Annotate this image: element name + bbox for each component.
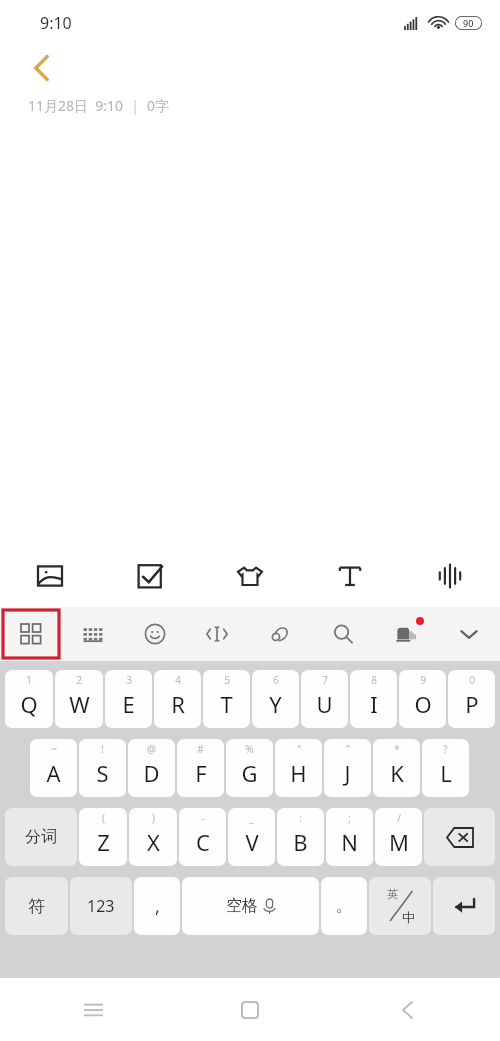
button[interactable]: / [375, 808, 422, 866]
staticText: 4 [175, 673, 181, 687]
staticText: G [241, 758, 258, 788]
button[interactable]: 空格 [182, 877, 319, 935]
button[interactable]: , [134, 877, 180, 935]
button[interactable]: Back [384, 987, 430, 1033]
button[interactable]: “ [275, 739, 322, 797]
staticText: * [394, 742, 400, 756]
staticText: 中 [402, 909, 415, 925]
button[interactable]: Train mode [374, 607, 437, 661]
button[interactable]: Keyboard panels [0, 607, 62, 661]
button[interactable]: Voice [400, 545, 500, 607]
staticText: E [122, 689, 135, 719]
button[interactable]: ) [129, 808, 177, 866]
staticText: 0字 [147, 96, 170, 115]
staticText: 8 [371, 673, 377, 687]
staticText: @ [147, 742, 156, 756]
button[interactable]: 0 [448, 670, 495, 728]
button[interactable]: 分词 [5, 808, 77, 866]
button[interactable]: Recent apps [70, 987, 116, 1033]
staticText: K [390, 758, 404, 788]
staticText: N [341, 827, 358, 857]
button[interactable]: @ [128, 739, 175, 797]
button[interactable]: Back [20, 47, 62, 89]
staticText: 3 [126, 673, 132, 687]
staticText: W [69, 689, 90, 719]
button[interactable]: _ [228, 808, 275, 866]
button[interactable]: : [277, 808, 324, 866]
button[interactable]: Home [227, 987, 273, 1033]
staticText: ; [348, 811, 351, 825]
button[interactable]: ; [326, 808, 373, 866]
button[interactable]: ~ [30, 739, 77, 797]
button[interactable]: 。 [321, 877, 367, 935]
staticText: 9:10 [40, 12, 72, 34]
staticText: % [245, 742, 254, 756]
staticText: 5 [224, 673, 230, 687]
button[interactable]: Cursor [186, 607, 248, 661]
staticText: ( [102, 811, 105, 825]
staticText: Q [20, 689, 38, 719]
staticText: 90 [463, 17, 474, 29]
staticText: L [440, 758, 452, 788]
button[interactable]: Template [200, 545, 300, 607]
staticText: 分词 [25, 827, 57, 847]
staticText: # [197, 742, 204, 756]
button[interactable]: 9 [399, 670, 446, 728]
button[interactable]: ( [79, 808, 127, 866]
button[interactable]: Keypad [62, 607, 124, 661]
button[interactable]: Emoji [124, 607, 186, 661]
staticText: D [143, 758, 160, 788]
button[interactable]: Search [311, 607, 374, 661]
button[interactable]: ! [79, 739, 126, 797]
button[interactable]: 2 [55, 670, 103, 728]
button[interactable]: Enter [433, 877, 495, 935]
button[interactable]: # [177, 739, 224, 797]
button[interactable]: 5 [203, 670, 250, 728]
staticText: X [147, 827, 160, 857]
button[interactable]: 8 [350, 670, 397, 728]
button[interactable]: Hide keyboard [437, 607, 500, 661]
button[interactable]: Backspace [424, 808, 495, 866]
button[interactable]: Clipboard [248, 607, 311, 661]
staticText: Y [269, 689, 282, 719]
button[interactable]: Insert image [0, 545, 100, 607]
button[interactable]: * [373, 739, 420, 797]
button[interactable]: 4 [154, 670, 201, 728]
staticText: 123 [87, 895, 115, 917]
staticText: 1 [26, 673, 32, 687]
staticText: B [293, 827, 308, 857]
staticText: R [171, 689, 185, 719]
staticText: A [46, 758, 61, 788]
button[interactable]: ” [324, 739, 371, 797]
staticText: - [201, 811, 205, 825]
staticText: S [96, 758, 109, 788]
staticText: 。 [336, 896, 352, 916]
staticText: F [195, 758, 207, 788]
staticText: T [220, 689, 233, 719]
staticText: U [316, 689, 333, 719]
staticText: H [290, 758, 307, 788]
staticText: : [299, 811, 302, 825]
button[interactable]: - [179, 808, 226, 866]
staticText: 2 [76, 673, 82, 687]
button[interactable]: Text style [300, 545, 400, 607]
staticText: M [389, 827, 409, 857]
staticText: ” [346, 742, 350, 756]
button[interactable]: 1 [5, 670, 53, 728]
button[interactable]: Checklist [100, 545, 200, 607]
staticText: 英 [387, 887, 398, 901]
staticText: / [397, 811, 401, 825]
button[interactable]: 符 [5, 877, 68, 935]
staticText: ~ [51, 742, 57, 756]
button[interactable]: 3 [105, 670, 152, 728]
button[interactable]: Switch language [369, 877, 431, 935]
staticText: 空格 [226, 896, 258, 916]
button[interactable]: % [226, 739, 273, 797]
button[interactable]: 7 [301, 670, 348, 728]
staticText: ? [443, 742, 448, 756]
button[interactable]: 6 [252, 670, 299, 728]
staticText: ! [101, 742, 104, 756]
button[interactable]: ? [422, 739, 469, 797]
staticText: 0 [469, 673, 475, 687]
button[interactable]: 123 [70, 877, 132, 935]
